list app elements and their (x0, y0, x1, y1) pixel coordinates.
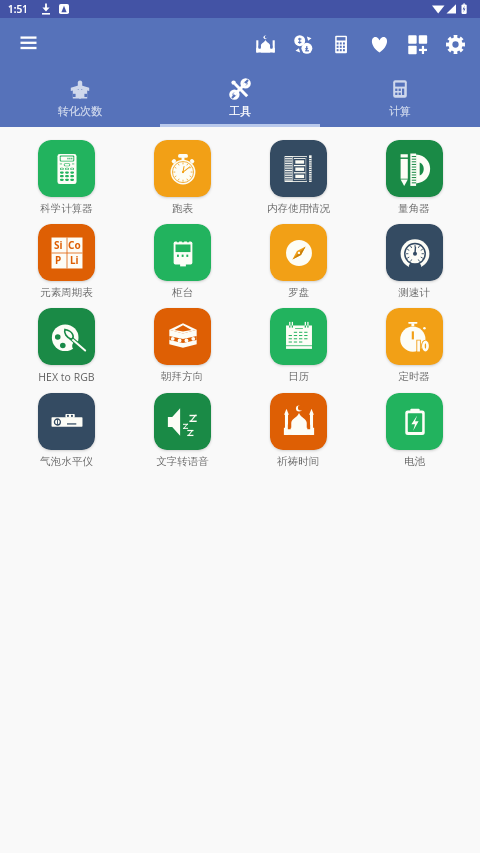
staticText: 内存使用情况 (267, 202, 330, 215)
staticText: Co (68, 238, 81, 252)
button[interactable]: 定时器 (356, 308, 472, 383)
button[interactable]: 内存使用情况 (240, 140, 356, 215)
button[interactable]: HEX to RGB (8, 308, 124, 384)
button[interactable]: Settings (436, 25, 474, 63)
button[interactable]: 跑表 (124, 140, 240, 215)
staticText: 柜台 (172, 286, 193, 299)
button[interactable]: 转化次数 (0, 70, 160, 127)
staticText: P (55, 253, 62, 267)
button[interactable]: Calculator (322, 25, 360, 63)
staticText: 测速计 (398, 286, 430, 299)
button[interactable]: 气泡水平仪 (8, 393, 124, 468)
staticText: 罗盘 (288, 286, 309, 299)
staticText: 计算 (389, 104, 411, 118)
staticText: 工具 (229, 104, 251, 118)
button[interactable]: 柜台 (124, 224, 240, 299)
staticText: 气泡水平仪 (40, 455, 93, 468)
staticText: 1:51 (8, 2, 28, 16)
button[interactable]: Prayer times (246, 25, 284, 63)
button[interactable]: 计算 (320, 70, 480, 127)
staticText: 元素周期表 (40, 286, 93, 299)
button[interactable]: Add tool (398, 25, 436, 63)
button[interactable]: 电池 (356, 393, 472, 468)
button[interactable]: 罗盘 (240, 224, 356, 299)
button[interactable]: 工具 (160, 70, 320, 127)
staticText: 文字转语音 (156, 455, 209, 468)
staticText: 祈祷时间 (277, 455, 319, 468)
staticText: HEX to RGB (38, 370, 95, 384)
button[interactable]: 测速计 (356, 224, 472, 299)
staticText: 日历 (288, 370, 309, 383)
button[interactable]: 科学计算器 (8, 140, 124, 215)
staticText: 跑表 (172, 202, 193, 215)
staticText: Si (54, 238, 63, 252)
staticText: 电池 (404, 455, 425, 468)
button[interactable]: Si (8, 224, 124, 299)
staticText: 转化次数 (58, 104, 102, 118)
button[interactable]: Favourites (360, 25, 398, 63)
button[interactable]: Open navigation menu (10, 26, 46, 62)
staticText: 定时器 (398, 370, 430, 383)
staticText: 朝拜方向 (161, 370, 203, 383)
staticText: 科学计算器 (40, 202, 93, 215)
button[interactable]: 朝拜方向 (124, 308, 240, 383)
staticText: Li (70, 253, 79, 267)
staticText: 量角器 (398, 202, 430, 215)
button[interactable]: 文字转语音 (124, 393, 240, 468)
button[interactable]: 祈祷时间 (240, 393, 356, 468)
button[interactable]: Currency converter (284, 25, 322, 63)
button[interactable]: 量角器 (356, 140, 472, 215)
button[interactable]: 日历 (240, 308, 356, 383)
